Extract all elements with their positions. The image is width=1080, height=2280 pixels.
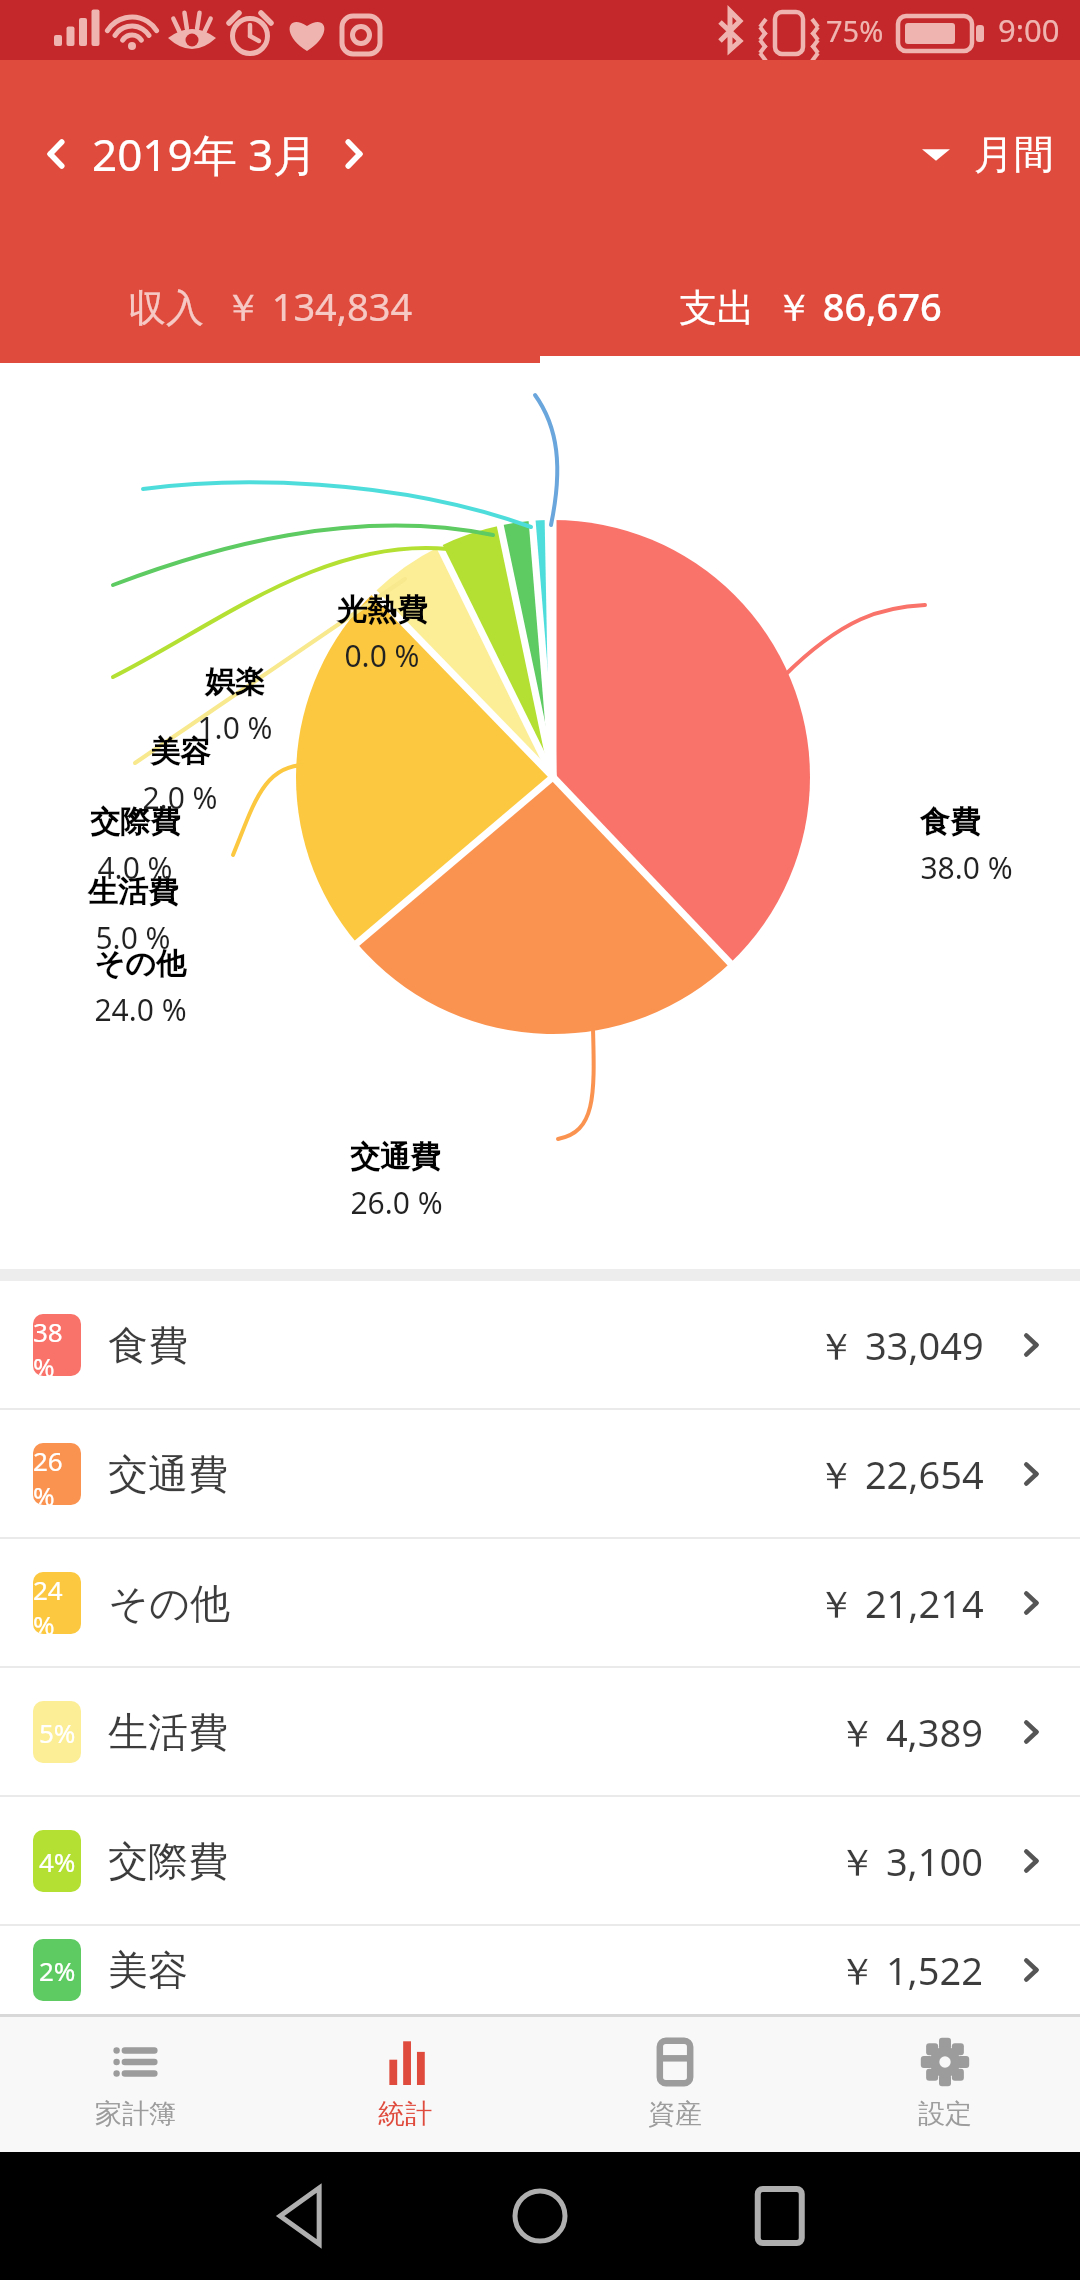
staticText: ￥ 21,214 <box>817 1577 984 1629</box>
staticText: 75% <box>826 11 884 50</box>
staticText: 生活費 <box>108 1707 228 1757</box>
staticText: 家計簿 <box>95 2097 176 2131</box>
staticText: 交通費 <box>350 1138 440 1176</box>
button[interactable]: 統計 <box>270 2017 540 2152</box>
staticText: 5% <box>39 1715 76 1750</box>
staticText: 支出 ￥ 86,676 <box>679 280 942 332</box>
button[interactable]: 2% <box>0 1926 1080 2014</box>
staticText: 娯楽 <box>205 663 265 701</box>
staticText: 1.0 % <box>197 707 273 748</box>
staticText: 食費 <box>108 1320 188 1370</box>
staticText: 24% <box>33 1572 81 1634</box>
button[interactable]: 家計簿 <box>0 2017 270 2152</box>
staticText: 交際費 <box>90 803 180 841</box>
button[interactable]: 38% <box>0 1281 1080 1408</box>
staticText: 24.0 % <box>94 989 187 1030</box>
staticText: 交際費 <box>108 1836 228 1886</box>
staticText: 5.0 % <box>95 917 171 958</box>
button[interactable]: 24% <box>0 1539 1080 1666</box>
staticText: その他 <box>108 1578 230 1628</box>
button[interactable]: Next month <box>318 119 388 189</box>
staticText: 美容 <box>150 733 210 771</box>
staticText: ￥ 3,100 <box>838 1835 984 1887</box>
staticText: 統計 <box>378 2097 432 2131</box>
staticText: 光熱費 <box>337 591 427 629</box>
staticText: 美容 <box>108 1945 188 1995</box>
staticText: 26.0 % <box>350 1182 443 1223</box>
staticText: ￥ 4,389 <box>838 1706 984 1758</box>
staticText: 0.0 % <box>344 635 420 676</box>
staticText: 生活費 <box>88 873 178 911</box>
button[interactable]: 資産 <box>540 2017 810 2152</box>
staticText: その他 <box>94 945 186 983</box>
staticText: 9:00 <box>998 9 1060 51</box>
button[interactable]: 5% <box>0 1668 1080 1795</box>
staticText: 38.0 % <box>920 847 1013 888</box>
staticText: 食費 <box>920 803 980 841</box>
staticText: 38% <box>33 1314 81 1376</box>
staticText: 資産 <box>648 2097 702 2131</box>
staticText: ￥ 1,522 <box>838 1944 984 1996</box>
button[interactable]: 26% <box>0 1410 1080 1537</box>
staticText: 2.0 % <box>142 777 218 818</box>
staticText: 2% <box>39 1953 76 1988</box>
staticText: ￥ 22,654 <box>817 1448 984 1500</box>
button[interactable]: 2019年 3月 <box>92 124 318 184</box>
staticText: ￥ 33,049 <box>817 1319 984 1371</box>
button[interactable]: 収入 ￥ 134,834 <box>0 248 540 363</box>
button[interactable]: Previous month <box>22 119 92 189</box>
staticText: 収入 ￥ 134,834 <box>128 280 413 332</box>
staticText: 交通費 <box>108 1449 228 1499</box>
button[interactable]: 設定 <box>810 2017 1080 2152</box>
button[interactable]: 4% <box>0 1797 1080 1924</box>
button[interactable]: 月間 <box>922 129 1054 179</box>
staticText: 4.0 % <box>97 847 173 888</box>
staticText: 26% <box>33 1443 81 1505</box>
button[interactable]: 支出 ￥ 86,676 <box>540 248 1080 363</box>
staticText: 月間 <box>974 129 1054 179</box>
staticText: 設定 <box>918 2097 972 2131</box>
staticText: 4% <box>39 1844 76 1879</box>
